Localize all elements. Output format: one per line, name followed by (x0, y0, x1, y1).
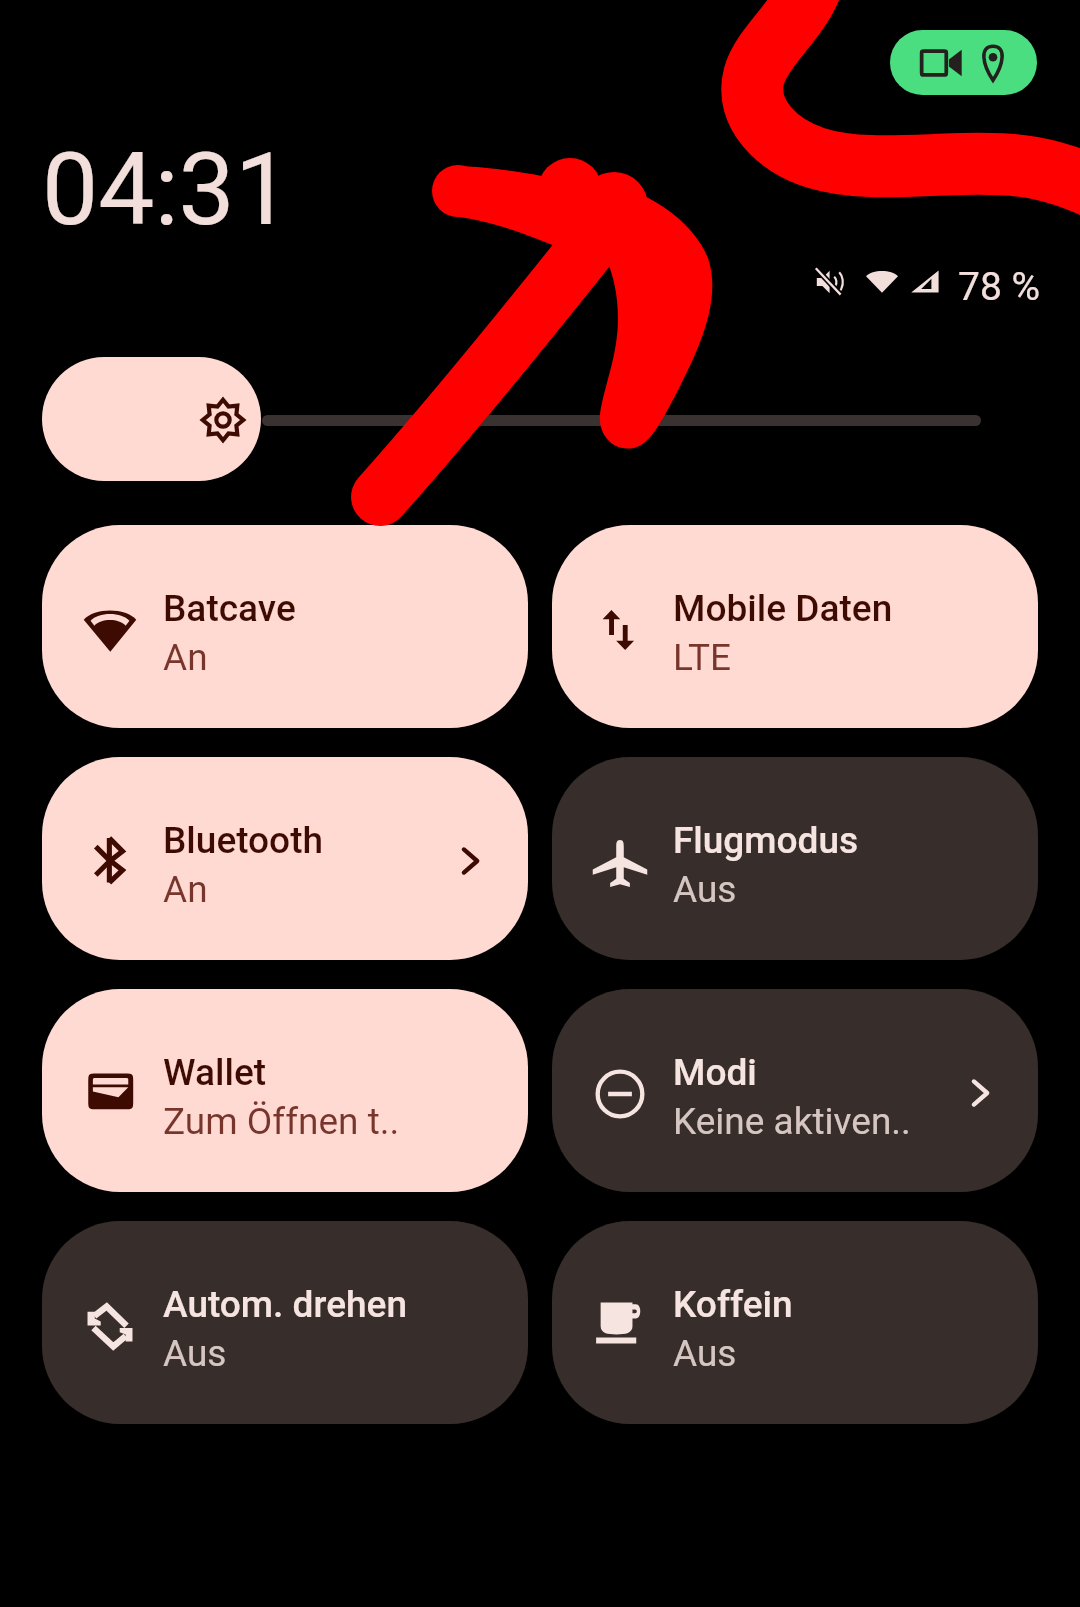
staticText: LTE (673, 636, 732, 679)
button[interactable]: Mobile Daten (552, 525, 1038, 728)
staticText: Mobile Daten (673, 587, 893, 630)
staticText: Zum Öffnen t.. (163, 1100, 400, 1143)
staticText: Batcave (163, 587, 296, 630)
staticText: Wallet (163, 1051, 267, 1094)
button[interactable]: Autom. drehen (42, 1221, 528, 1424)
staticText: Flugmodus (673, 819, 859, 862)
staticText: Aus (163, 1332, 227, 1375)
staticText: Modi (673, 1051, 757, 1094)
staticText: 04:31 (42, 131, 292, 248)
staticText: Bluetooth (163, 819, 324, 862)
button[interactable]: Wallet (42, 989, 528, 1192)
button[interactable]: Camera and location active (890, 30, 1037, 95)
staticText: Koffein (673, 1283, 793, 1326)
button[interactable]: Batcave (42, 525, 528, 728)
staticText: An (163, 636, 208, 679)
button[interactable]: Bluetooth (42, 757, 528, 960)
button[interactable]: Brightness (42, 357, 261, 481)
staticText: An (163, 868, 208, 911)
staticText: 78 % (958, 264, 1041, 310)
button[interactable]: Modi (552, 989, 1038, 1192)
staticText: Aus (673, 868, 737, 911)
staticText: Keine aktiven.. (673, 1100, 911, 1143)
staticText: Autom. drehen (163, 1283, 407, 1326)
staticText: Aus (673, 1332, 737, 1375)
button[interactable]: Flugmodus (552, 757, 1038, 960)
button[interactable]: Koffein (552, 1221, 1038, 1424)
